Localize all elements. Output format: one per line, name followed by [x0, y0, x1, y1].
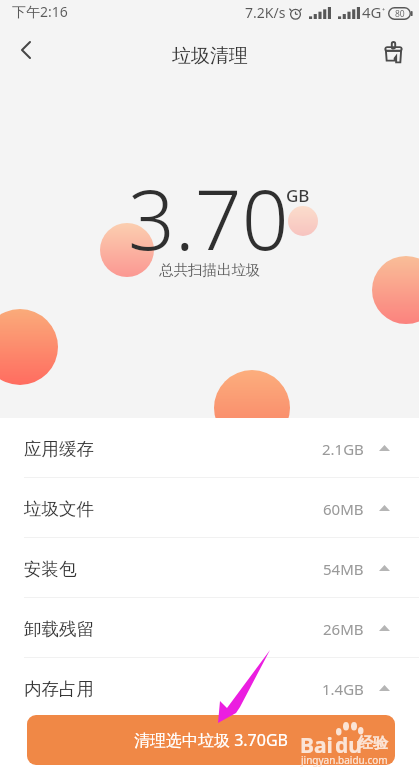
staticText: Bai — [300, 731, 333, 760]
staticText: jingyan.baidu.com — [301, 753, 388, 767]
button[interactable]: Back — [0, 30, 52, 82]
button[interactable]: 应用缓存 — [0, 418, 419, 477]
button[interactable]: 安装包 — [0, 538, 419, 597]
staticText: ⁺ — [382, 5, 386, 17]
staticText: 安装包 — [24, 558, 77, 580]
button[interactable]: 垃圾文件 — [0, 478, 419, 537]
staticText: 54MB — [323, 559, 364, 579]
staticText: 4G — [362, 2, 382, 22]
staticText: 26MB — [323, 619, 364, 639]
staticText: 3.70 — [128, 162, 289, 274]
staticText: 7.2K/s — [245, 3, 286, 22]
button[interactable]: 清理选中垃圾 3.70GB — [27, 715, 395, 765]
staticText: 60MB — [323, 499, 364, 519]
button[interactable]: 卸载残留 — [0, 598, 419, 657]
staticText: 总共扫描出垃圾 — [159, 261, 261, 279]
staticText: 1.4GB — [322, 679, 364, 699]
button[interactable]: 内存占用 — [0, 658, 419, 717]
staticText: 2.1GB — [322, 439, 364, 459]
staticText: GB — [286, 184, 310, 207]
staticText: 清理选中垃圾 3.70GB — [134, 729, 288, 751]
staticText: 经验 — [358, 734, 388, 753]
staticText: du — [335, 731, 362, 760]
staticText: 卸载残留 — [24, 618, 94, 640]
staticText: 垃圾文件 — [24, 498, 94, 520]
staticText: 下午2:16 — [12, 2, 68, 21]
staticText: 内存占用 — [24, 678, 94, 700]
button[interactable]: Clean — [367, 30, 419, 82]
staticText: 80 — [395, 8, 405, 20]
staticText: 应用缓存 — [24, 438, 94, 460]
staticText: 垃圾清理 — [172, 44, 248, 68]
